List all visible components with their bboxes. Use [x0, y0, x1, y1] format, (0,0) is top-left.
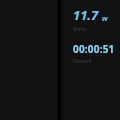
staticText: Elapsed	[73, 58, 92, 65]
staticText: 11.7	[73, 6, 99, 24]
staticText: W	[102, 15, 108, 23]
staticText: Watts	[73, 26, 87, 33]
staticText: 00:00:51	[73, 42, 115, 56]
button[interactable]: 11.7	[62, 0, 120, 65]
